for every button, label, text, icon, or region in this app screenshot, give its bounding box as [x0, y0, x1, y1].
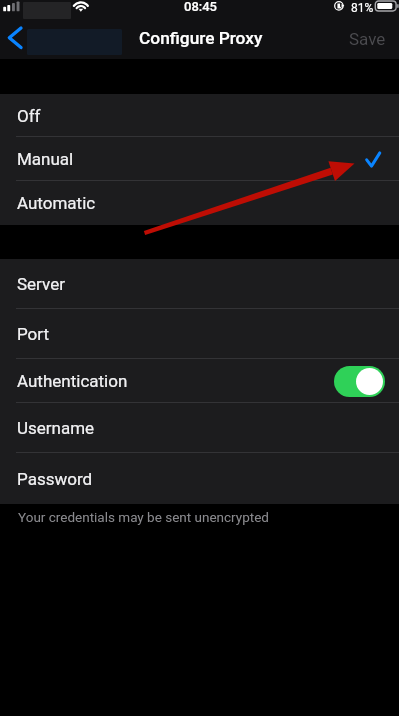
staticText: Server — [17, 274, 65, 294]
staticText: Authentication — [17, 371, 128, 391]
button[interactable]: Manual — [0, 137, 399, 181]
staticText: Configure Proxy — [139, 28, 263, 48]
other: Selected — [366, 153, 386, 173]
button[interactable]: Authentication — [0, 359, 399, 403]
staticText: Port — [17, 324, 50, 344]
button[interactable]: Port — [0, 309, 399, 359]
staticText: Manual — [17, 149, 74, 169]
staticText: 81% — [351, 1, 374, 15]
button[interactable] — [334, 366, 385, 397]
staticText: Your credentials may be sent unencrypted — [18, 509, 269, 525]
button[interactable]: Automatic — [0, 181, 399, 225]
button[interactable]: Server — [0, 259, 399, 309]
button[interactable]: Username — [0, 403, 399, 453]
staticText: Save — [349, 29, 386, 49]
button[interactable]: Back — [3, 23, 31, 51]
staticText: Automatic — [17, 193, 96, 213]
button[interactable]: Password — [0, 453, 399, 504]
staticText: Password — [17, 469, 93, 489]
staticText: Off — [17, 106, 41, 126]
staticText: 08:45 — [184, 0, 218, 14]
button[interactable]: Save — [349, 29, 386, 49]
button[interactable]: Off — [0, 94, 399, 137]
staticText: Username — [17, 418, 95, 438]
